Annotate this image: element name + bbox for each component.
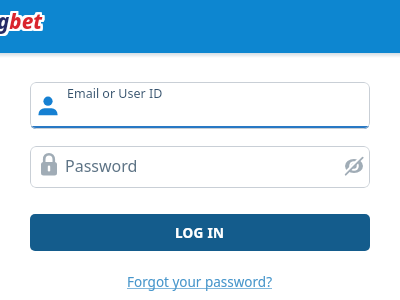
staticText: gbet bbox=[0, 6, 45, 34]
staticText: gbet bbox=[0, 5, 43, 33]
staticText: gbet bbox=[0, 6, 43, 34]
button[interactable]: Email or User ID bbox=[30, 82, 370, 129]
staticText: gbet bbox=[0, 9, 43, 37]
button[interactable]: Forgot your password? bbox=[127, 273, 273, 291]
staticText: gbet bbox=[0, 6, 44, 34]
button[interactable] bbox=[342, 155, 366, 179]
staticText: gbet bbox=[0, 9, 45, 37]
staticText: LOG IN bbox=[175, 224, 225, 242]
staticText: gbet bbox=[0, 7, 44, 35]
staticText: gbet bbox=[0, 9, 44, 37]
staticText: gbet bbox=[0, 6, 41, 34]
staticText: gbet bbox=[0, 7, 41, 35]
staticText: gbet bbox=[0, 7, 43, 35]
staticText: gbet bbox=[0, 8, 41, 36]
staticText: gbet bbox=[0, 8, 45, 36]
staticText: gbet bbox=[0, 5, 44, 33]
staticText: gbet bbox=[0, 5, 41, 33]
staticText: gbet bbox=[0, 7, 45, 35]
button[interactable]: Password bbox=[30, 146, 370, 188]
staticText: gbet bbox=[0, 8, 42, 36]
staticText: gbet bbox=[0, 8, 44, 36]
button[interactable]: LOG IN bbox=[30, 214, 370, 251]
staticText: gbet bbox=[0, 6, 42, 34]
staticText: gbet bbox=[0, 9, 41, 37]
staticText: gbet bbox=[0, 9, 42, 37]
staticText: gbet bbox=[0, 8, 43, 36]
staticText: gbet bbox=[0, 5, 42, 33]
staticText: gbet bbox=[0, 5, 45, 33]
staticText: gbet bbox=[0, 7, 42, 35]
staticText: Password bbox=[65, 155, 138, 177]
staticText: Email or User ID bbox=[67, 85, 163, 102]
